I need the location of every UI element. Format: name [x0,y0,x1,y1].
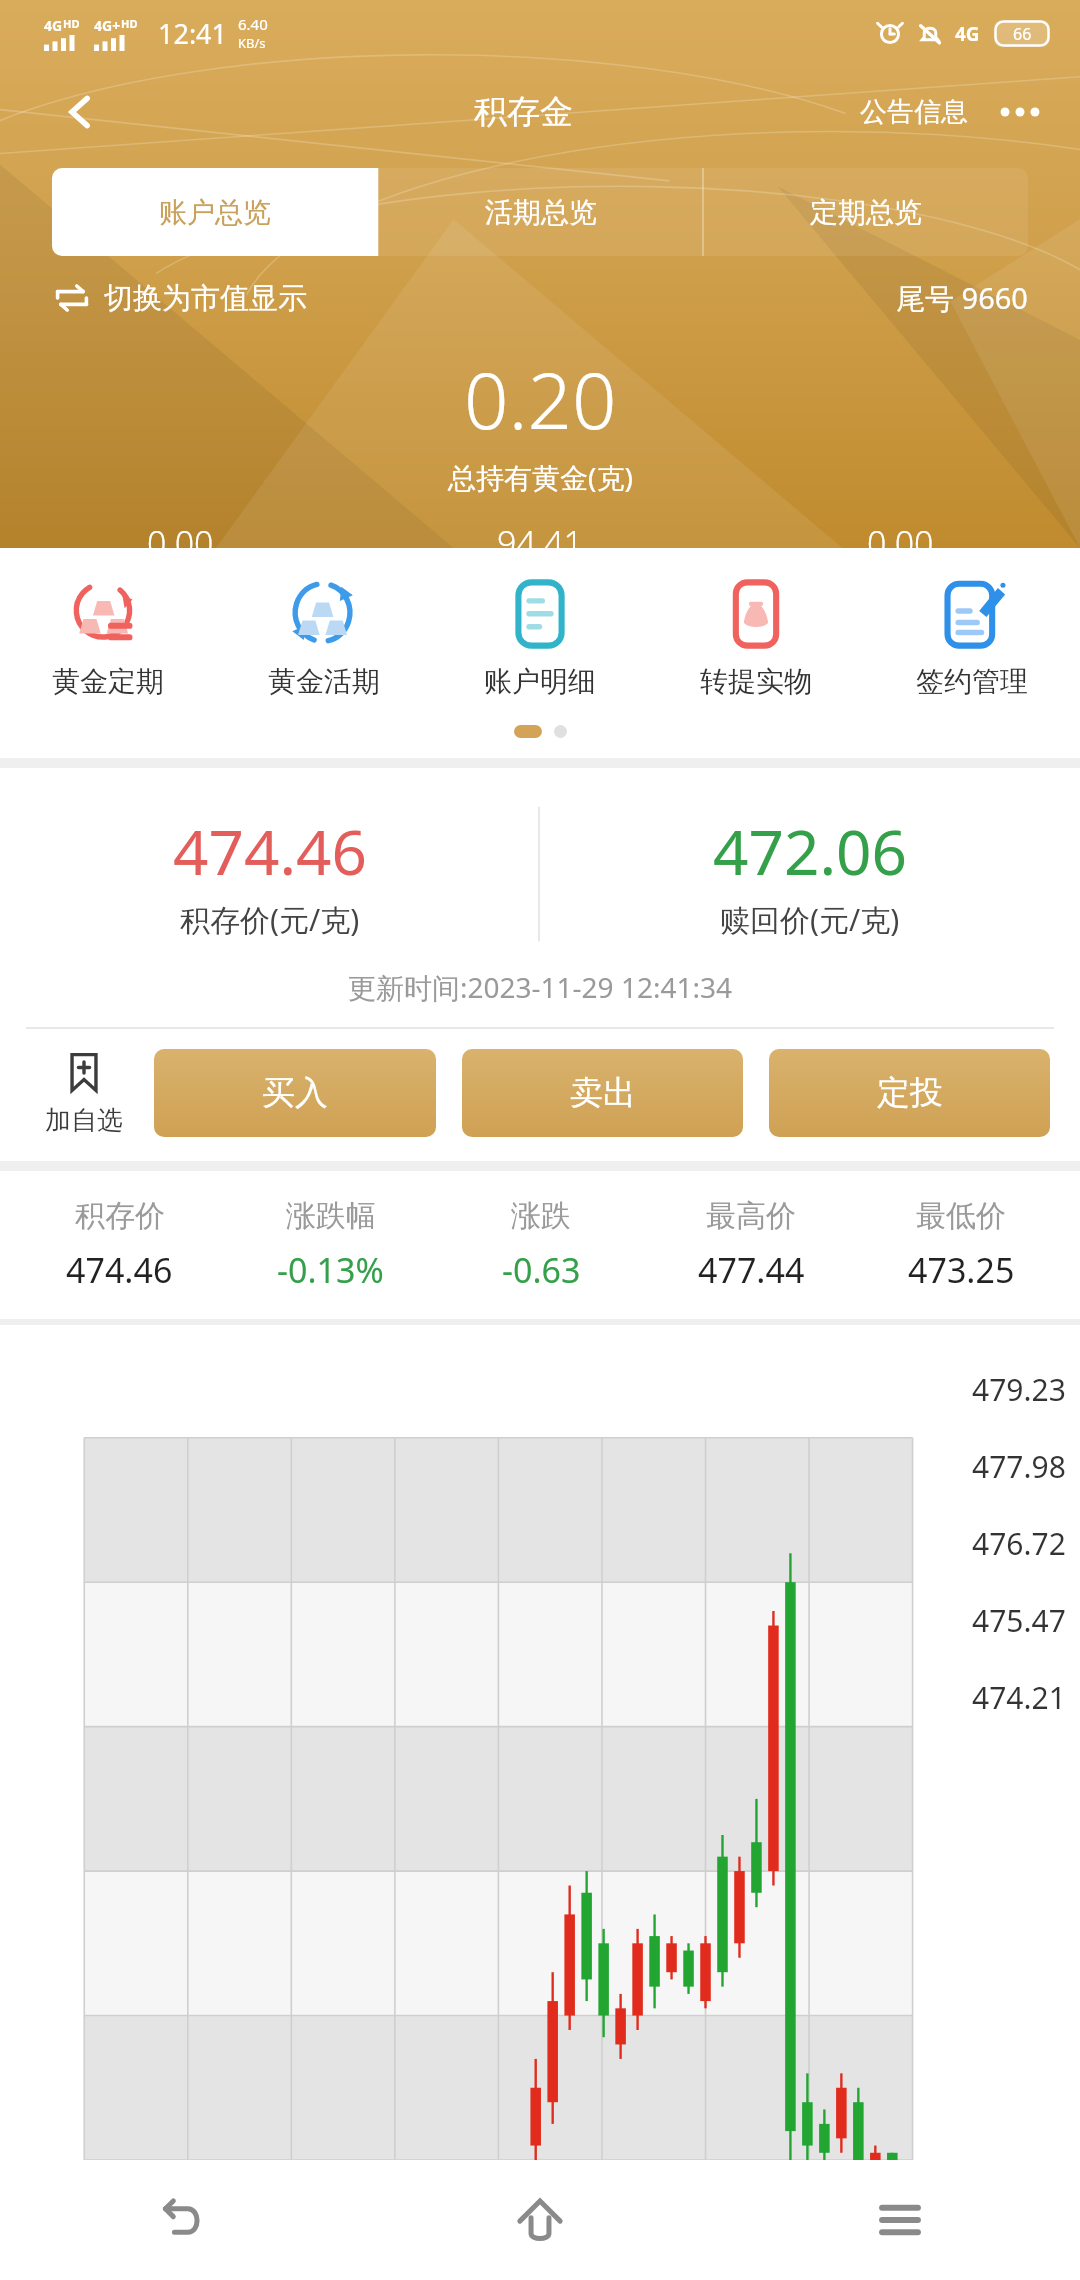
staticText: 4G [955,21,980,47]
staticText: 公告信息 [860,95,968,129]
button[interactable]: 定投 [769,1049,1050,1137]
staticText: 474.21 [972,1677,1066,1718]
staticText: 最低价 [916,1197,1006,1235]
staticText: 6.40 [238,14,268,34]
staticText: 475.47 [972,1600,1066,1641]
staticText: 转提实物 [700,664,812,699]
staticText: 0.00 [867,520,934,548]
staticText: -0.13% [277,1247,384,1293]
staticText: 479.23 [972,1369,1066,1410]
staticText: 活期总览 [485,195,597,230]
staticText: 定投 [877,1072,943,1114]
staticText: 卖出 [570,1072,636,1114]
staticText: 66 [1013,23,1032,45]
button[interactable]: 签约管理 [864,574,1080,703]
button[interactable]: 黄金活期 [216,574,432,703]
staticText: 477.98 [972,1446,1066,1487]
button[interactable]: More options [994,86,1046,138]
staticText: 积存价 [75,1197,165,1235]
button[interactable]: 定期总览 [703,168,1028,256]
staticText: -0.63 [502,1247,581,1293]
staticText: 最高价 [706,1197,796,1235]
button[interactable]: Back [52,84,108,140]
staticText: 4G [44,16,63,35]
staticText: 签约管理 [916,664,1028,699]
staticText: 买入 [262,1072,328,1114]
staticText: HD [121,16,138,31]
button[interactable]: 转提实物 [648,574,864,703]
button[interactable]: Recent apps [720,2160,1080,2280]
staticText: 472.06 [713,809,907,893]
staticText: 94.41 [497,520,583,548]
staticText: 账户总览 [159,195,271,230]
staticText: 定期总览 [810,195,922,230]
button[interactable]: 切换为市值显示 [52,278,307,318]
staticText: 12:41 [158,15,228,52]
button[interactable]: 账户明细 [432,574,648,703]
staticText: 账户明细 [484,664,596,699]
staticText: 切换为市值显示 [104,280,307,317]
staticText: 总持有黄金(克) [448,458,633,496]
staticText: 474.46 [66,1247,173,1293]
staticText: 尾号 9660 [896,278,1028,318]
staticText: 0.20 [464,346,617,452]
staticText: 涨跌 [511,1197,571,1235]
staticText: 加自选 [45,1104,123,1137]
staticText: 0.00 [147,520,214,548]
button[interactable]: 买入 [154,1049,436,1137]
button[interactable]: 账户总览 [52,168,378,256]
staticText: 477.44 [698,1247,805,1293]
button[interactable]: 加自选 [30,1050,138,1137]
button[interactable]: 卖出 [462,1049,743,1137]
staticText: HD [63,16,80,31]
staticText: 476.72 [972,1523,1066,1564]
staticText: 积存价(元/克) [180,899,360,940]
button[interactable]: 黄金定期 [0,574,216,703]
staticText: 积存金 [474,91,573,133]
staticText: KB/s [238,34,266,52]
button[interactable]: 活期总览 [378,168,703,256]
button[interactable]: Home [360,2160,720,2280]
button[interactable]: 公告信息 [856,87,972,137]
staticText: 4G+ [94,16,121,35]
staticText: 黄金定期 [52,664,164,699]
staticText: 更新时间:2023-11-29 12:41:34 [0,968,1080,1006]
staticText: 赎回价(元/克) [720,899,900,940]
button[interactable]: Back [0,2160,360,2280]
staticText: 474.46 [173,809,367,893]
staticText: 473.25 [908,1247,1015,1293]
staticText: 黄金活期 [268,664,380,699]
staticText: 涨跌幅 [286,1197,376,1235]
